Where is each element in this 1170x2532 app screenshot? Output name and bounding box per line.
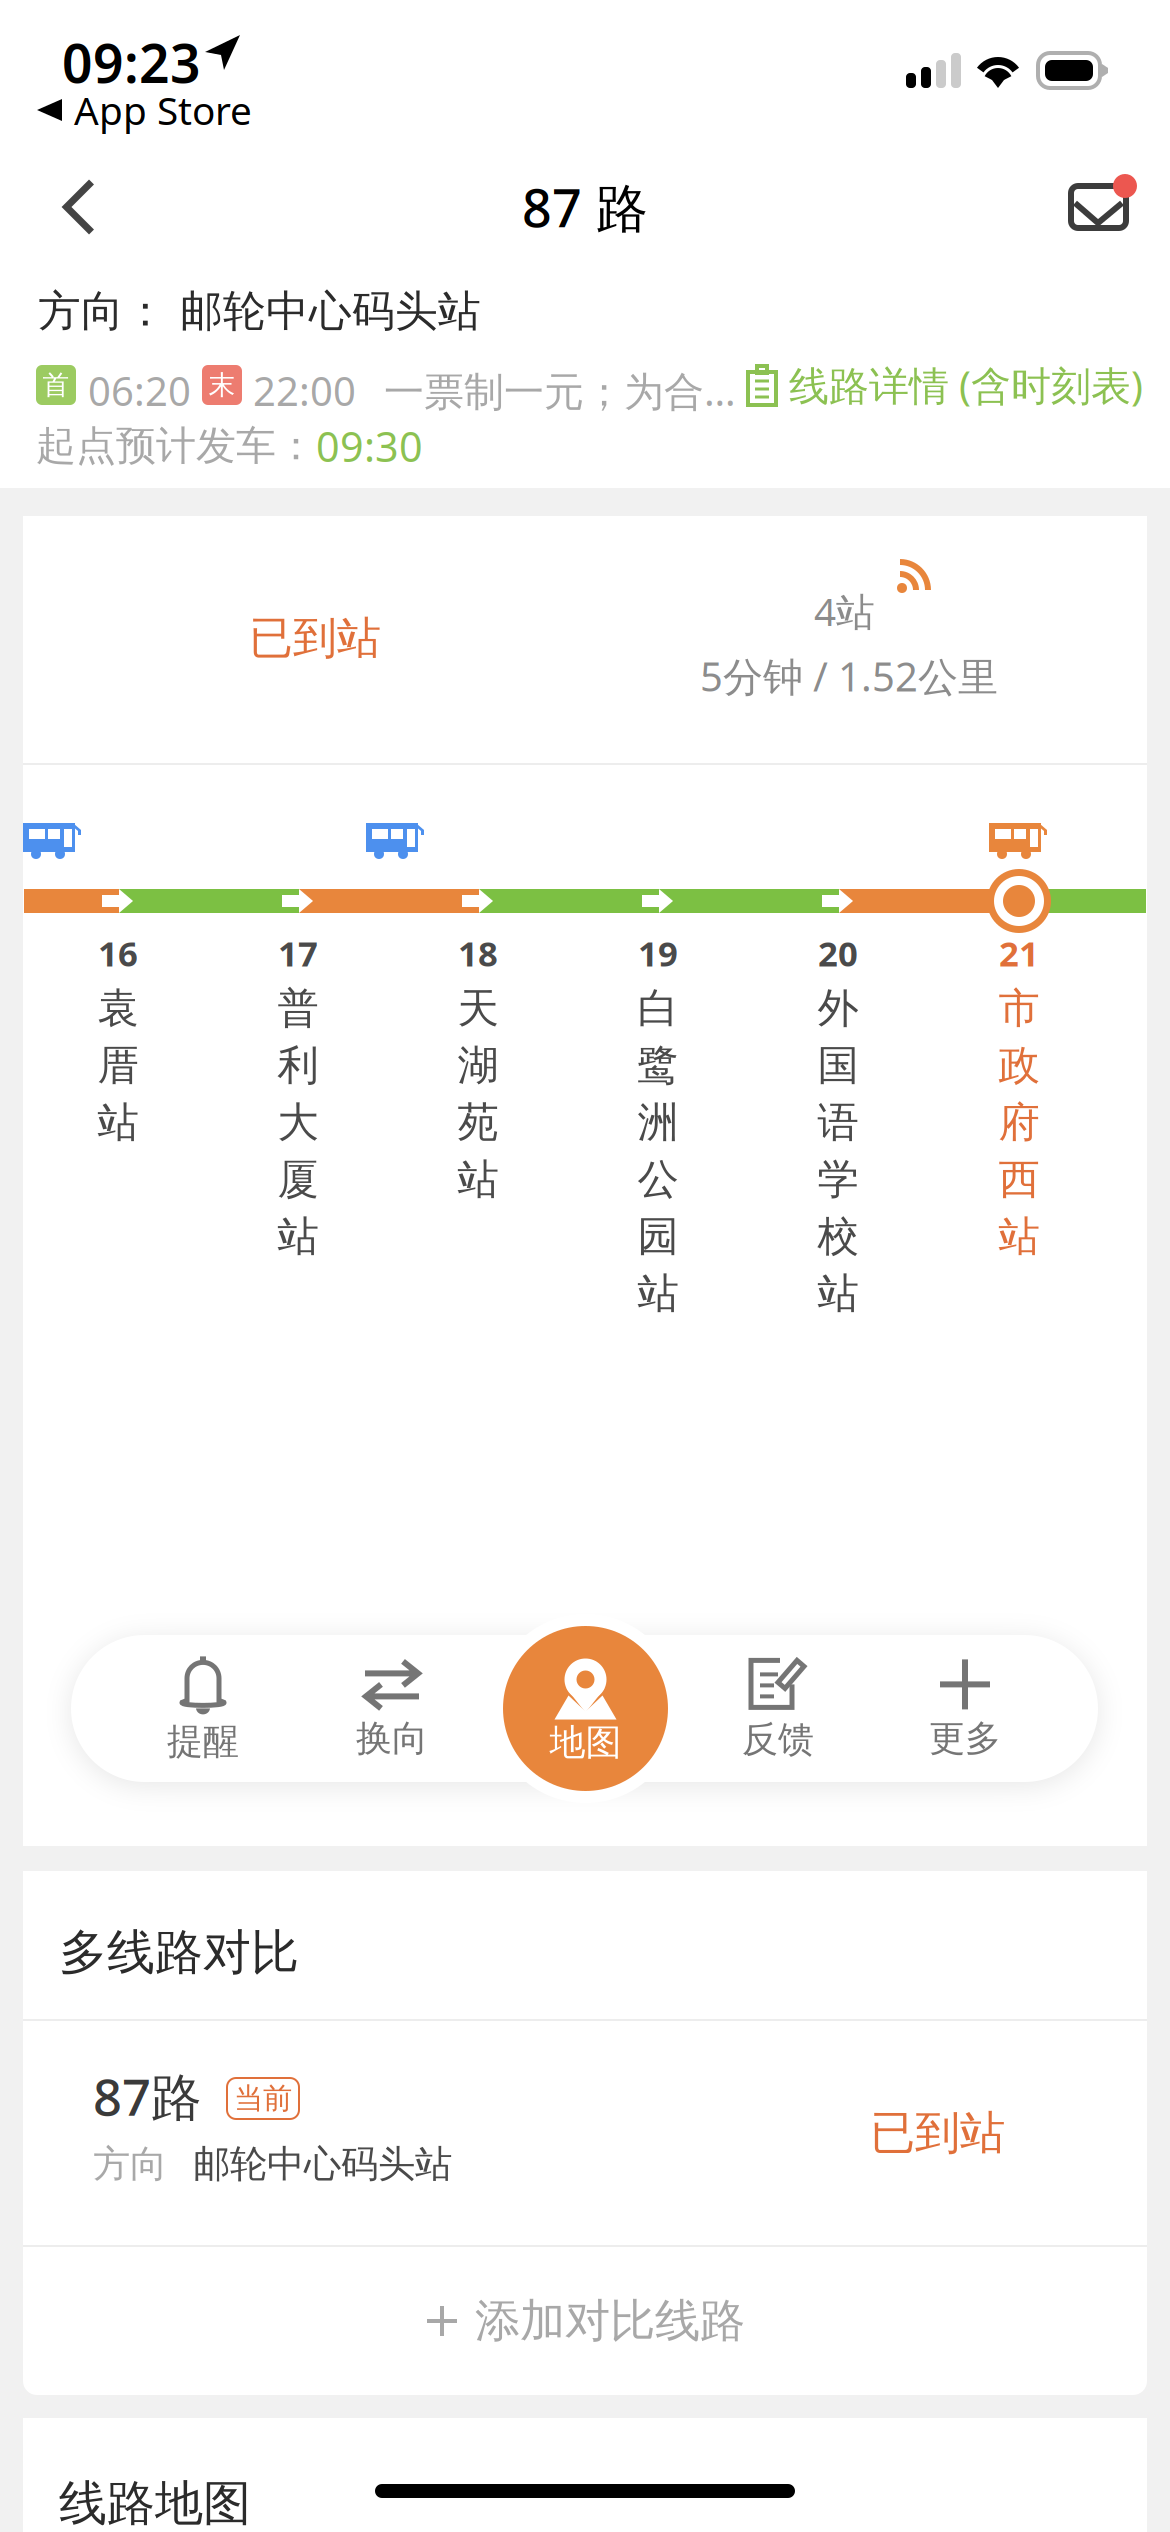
staticText: App Store [74, 84, 252, 136]
staticText: 公 [637, 1154, 678, 1205]
staticText: 市 [998, 983, 1039, 1034]
button[interactable]: 地图 [491, 1614, 680, 1803]
staticText: 普 [277, 983, 318, 1034]
staticText: 国 [817, 1040, 858, 1091]
button[interactable]: Back [24, 148, 134, 266]
staticText: 已到站 [249, 611, 381, 665]
staticText: 4站 [814, 585, 875, 637]
button[interactable]: 提醒 [123, 1635, 283, 1782]
staticText: 厦 [277, 1154, 318, 1205]
button[interactable]: 换向 [312, 1635, 472, 1782]
staticText: 20 [818, 930, 858, 976]
button[interactable]: 添加对比线路 [23, 2247, 1147, 2395]
staticText: 邮轮中心码头站 [193, 2141, 452, 2187]
staticText: 18 [458, 930, 498, 976]
staticText: 利 [277, 1040, 318, 1091]
staticText: 西 [998, 1154, 1039, 1205]
staticText: 当前 [234, 2080, 292, 2116]
staticText: 21 [999, 930, 1039, 976]
staticText: 19 [638, 930, 678, 976]
staticText: 5分钟 / 1.52公里 [700, 649, 998, 702]
staticText: 袁 [97, 983, 138, 1034]
button[interactable]: 反馈 [698, 1635, 858, 1782]
staticText: 反馈 [742, 1717, 814, 1762]
staticText: 地图 [549, 1720, 621, 1765]
staticText: 天 [457, 983, 498, 1034]
button[interactable]: 更多 [885, 1635, 1045, 1782]
staticText: 方向： 邮轮中心码头站 [38, 285, 481, 337]
staticText: 苑 [457, 1097, 498, 1148]
staticText: 起点预计发车： [36, 421, 316, 470]
button[interactable]: Messages [1049, 142, 1159, 260]
staticText: 已到站 [870, 2105, 1005, 2161]
staticText: 多线路对比 [59, 1923, 299, 1982]
staticText: 府 [998, 1097, 1039, 1148]
staticText: 站 [277, 1211, 318, 1262]
staticText: 22:00 [253, 364, 356, 417]
staticText: 16 [98, 930, 138, 976]
staticText: 厝 [97, 1040, 138, 1091]
staticText: 首 [42, 369, 69, 401]
staticText: 语 [817, 1097, 858, 1148]
staticText: 添加对比线路 [475, 2293, 745, 2349]
staticText: 换向 [356, 1716, 428, 1761]
staticText: 湖 [457, 1040, 498, 1091]
staticText: 线路详情 (含时刻表) [789, 358, 1143, 411]
staticText: 外 [817, 983, 858, 1034]
staticText: 洲 [637, 1097, 678, 1148]
staticText: 站 [998, 1211, 1039, 1262]
button[interactable]: 87路 [23, 2021, 1147, 2245]
staticText: 白 [637, 983, 678, 1034]
staticText: 大 [277, 1097, 318, 1148]
staticText: 园 [637, 1211, 678, 1262]
button[interactable]: 线路详情 (含时刻表) [745, 358, 1143, 412]
staticText: 末 [208, 369, 235, 401]
staticText: 06:20 [88, 364, 191, 417]
staticText: 更多 [929, 1716, 1001, 1761]
staticText: 87路 [93, 2062, 202, 2130]
staticText: 站 [637, 1268, 678, 1319]
staticText: 一票制一元；为合… [384, 364, 736, 417]
staticText: 站 [457, 1154, 498, 1205]
staticText: 站 [817, 1268, 858, 1319]
staticText: 09:23 [62, 27, 201, 98]
staticText: 17 [278, 930, 318, 976]
staticText: 政 [998, 1040, 1039, 1091]
staticText: 站 [97, 1097, 138, 1148]
staticText: 方向 [93, 2141, 167, 2187]
staticText: 鹭 [637, 1040, 678, 1091]
staticText: 提醒 [167, 1719, 239, 1764]
staticText: 学 [817, 1154, 858, 1205]
staticText: 线路地图 [59, 2474, 251, 2532]
staticText: 09:30 [316, 419, 423, 473]
staticText: 87 路 [522, 172, 648, 242]
staticText: 校 [817, 1211, 858, 1262]
